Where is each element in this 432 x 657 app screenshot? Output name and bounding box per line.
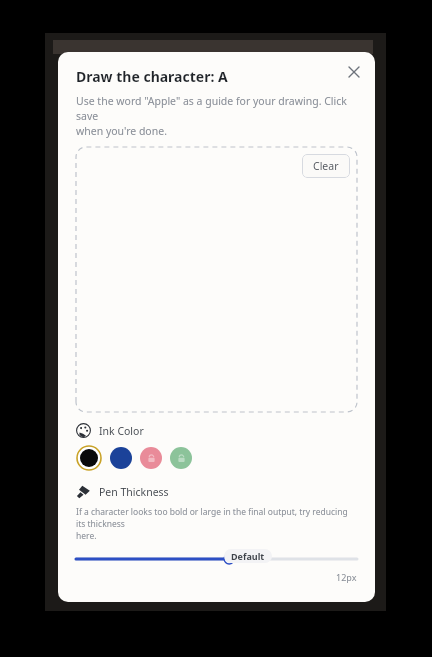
button[interactable]: Clear [302, 154, 350, 178]
staticText: Ink Color [99, 424, 144, 438]
button[interactable]: Default [76, 550, 357, 568]
button[interactable]: Close [341, 59, 367, 85]
staticText: If a character looks too bold or large i… [76, 506, 357, 542]
button[interactable] [110, 447, 132, 469]
button[interactable] [140, 447, 162, 469]
staticText: Clear [313, 159, 339, 173]
other: Pen thickness [76, 484, 91, 499]
staticText: Use the word "Apple" as a guide for your… [76, 94, 357, 138]
staticText: Draw the character: A [76, 67, 228, 86]
other: Ink color [76, 423, 91, 438]
staticText: 12px [336, 571, 357, 583]
staticText: Pen Thickness [99, 485, 169, 499]
staticText: Default [231, 550, 265, 562]
button[interactable] [170, 447, 192, 469]
button[interactable] [76, 445, 102, 471]
